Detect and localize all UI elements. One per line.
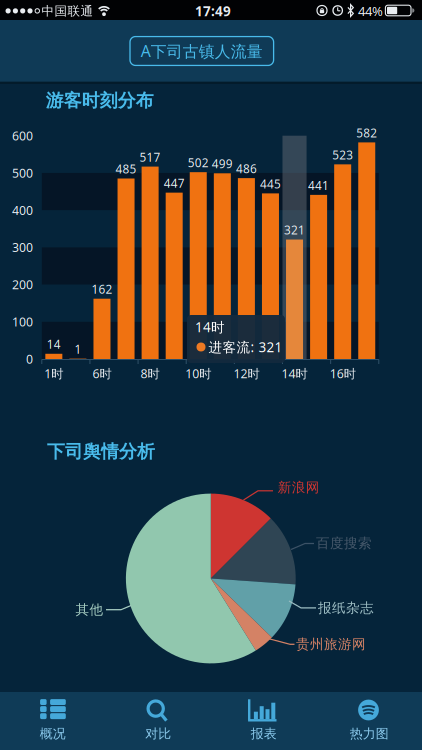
- staticText: 8时: [141, 365, 160, 382]
- staticText: 概况: [40, 726, 66, 742]
- staticText: 162: [91, 281, 112, 297]
- staticText: 0: [26, 351, 33, 367]
- staticText: 523: [332, 147, 353, 163]
- staticText: 其他: [75, 601, 103, 618]
- staticText: 200: [12, 276, 33, 293]
- staticText: 1时: [44, 365, 63, 382]
- staticText: 321: [284, 222, 305, 238]
- staticText: 16时: [330, 365, 356, 382]
- staticText: 进客流: 321: [208, 338, 282, 356]
- staticText: 1: [74, 341, 81, 357]
- staticText: 100: [12, 313, 33, 330]
- staticText: 14时: [195, 318, 225, 336]
- staticText: 12时: [233, 365, 259, 382]
- button[interactable]: 报表: [211, 692, 316, 750]
- button[interactable]: 热力图: [316, 692, 422, 750]
- staticText: 10时: [185, 365, 211, 382]
- staticText: 6时: [92, 365, 111, 382]
- staticText: 582: [356, 125, 377, 141]
- staticText: 600: [12, 127, 33, 144]
- staticText: 17:49: [195, 2, 231, 20]
- staticText: 报表: [251, 726, 277, 742]
- staticText: 485: [115, 161, 136, 177]
- staticText: A下司古镇人流量: [141, 40, 263, 62]
- staticText: 441: [308, 177, 329, 193]
- staticText: 400: [12, 202, 33, 219]
- staticText: 447: [164, 175, 185, 191]
- staticText: 百度搜索: [316, 535, 372, 552]
- staticText: 对比: [145, 726, 171, 742]
- staticText: 499: [212, 156, 233, 172]
- staticText: 中国联通: [41, 3, 93, 19]
- staticText: 445: [260, 176, 281, 192]
- staticText: 44%: [358, 2, 383, 20]
- staticText: 热力图: [350, 726, 389, 742]
- staticText: 报纸杂志: [318, 599, 374, 616]
- staticText: 300: [12, 239, 33, 256]
- staticText: 下司舆情分析: [47, 440, 155, 463]
- button[interactable]: 概况: [0, 692, 105, 750]
- staticText: 14: [47, 336, 61, 352]
- button[interactable]: A下司古镇人流量: [130, 36, 274, 65]
- staticText: 500: [12, 164, 33, 181]
- staticText: 14时: [281, 365, 307, 382]
- staticText: 贵州旅游网: [296, 636, 366, 653]
- staticText: 517: [140, 149, 161, 165]
- staticText: 502: [188, 155, 209, 171]
- button[interactable]: 对比: [105, 692, 211, 750]
- staticText: 486: [236, 161, 257, 177]
- staticText: 游客时刻分布: [46, 89, 154, 112]
- staticText: 新浪网: [278, 479, 320, 496]
